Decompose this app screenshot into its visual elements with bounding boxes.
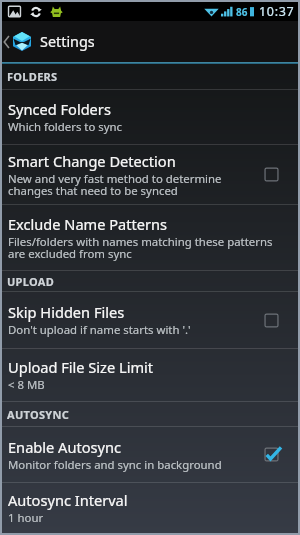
staticText: UPLOAD bbox=[7, 274, 55, 289]
staticText: Don't upload if name starts with '.' bbox=[8, 322, 191, 338]
button[interactable]: Navigate up bbox=[2, 21, 33, 62]
staticText: < 8 MB bbox=[8, 377, 45, 393]
staticText: 1 hour bbox=[8, 510, 44, 526]
button[interactable]: Upload File Size Limit bbox=[2, 349, 298, 402]
staticText: 10:37 bbox=[259, 3, 295, 20]
staticText: Which folders to sync bbox=[8, 119, 123, 135]
staticText: Skip Hidden Files bbox=[8, 302, 125, 322]
button[interactable]: Smart Change Detection bbox=[2, 145, 298, 205]
staticText: Autosync Interval bbox=[8, 490, 128, 510]
staticText: Enable Autosync bbox=[8, 437, 121, 457]
staticText: Monitor folders and sync in background bbox=[8, 457, 222, 473]
button[interactable]: Autosync Interval bbox=[2, 483, 298, 533]
staticText: Settings bbox=[40, 32, 95, 52]
staticText: Synced Folders bbox=[8, 99, 111, 119]
button[interactable]: Skip Hidden Files bbox=[2, 292, 298, 349]
staticText: AUTOSYNC bbox=[7, 407, 70, 422]
staticText: Upload File Size Limit bbox=[8, 357, 154, 377]
staticText: 86 bbox=[236, 5, 248, 19]
staticText: FOLDERS bbox=[7, 69, 58, 84]
staticText: Files/folders with names matching these … bbox=[8, 234, 273, 262]
staticText: New and very fast method to determine ch… bbox=[8, 171, 222, 199]
button[interactable]: Enable Autosync bbox=[2, 427, 298, 483]
staticText: Smart Change Detection bbox=[8, 151, 176, 171]
button[interactable]: Synced Folders bbox=[2, 90, 298, 145]
button[interactable]: Exclude Name Patterns bbox=[2, 205, 298, 271]
staticText: Exclude Name Patterns bbox=[8, 214, 168, 234]
